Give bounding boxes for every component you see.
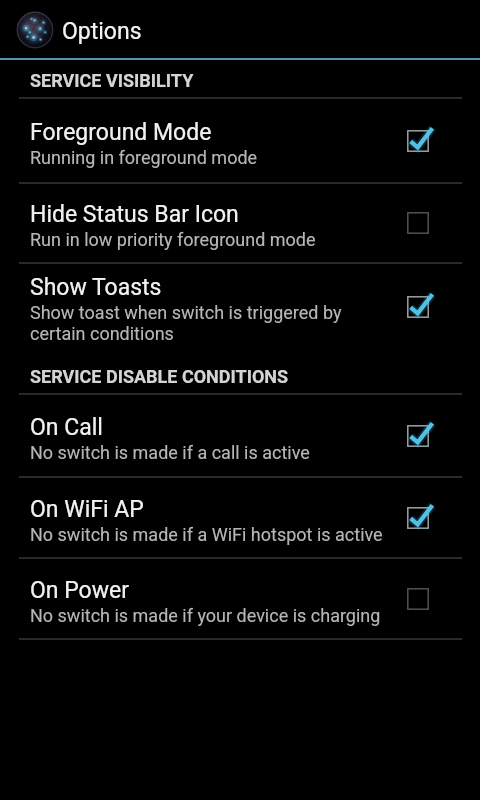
staticText: Show toast when switch is triggered by c… bbox=[30, 302, 388, 345]
button[interactable]: On Power bbox=[0, 559, 480, 638]
other: On Call, checked bbox=[396, 416, 440, 456]
other: Hide Status Bar Icon, not checked bbox=[396, 203, 440, 243]
staticText: Running in foreground mode bbox=[30, 147, 258, 168]
staticText: Foreground Mode bbox=[30, 119, 212, 146]
staticText: Run in low priority foreground mode bbox=[30, 229, 316, 250]
staticText: On WiFi AP bbox=[30, 496, 144, 523]
button[interactable]: Hide Status Bar Icon bbox=[0, 184, 480, 262]
other: On WiFi AP, checked bbox=[396, 498, 440, 538]
button[interactable]: Show Toasts bbox=[0, 264, 480, 350]
staticText: On Call bbox=[30, 414, 103, 441]
other: Show Toasts, checked bbox=[396, 287, 440, 327]
button[interactable]: On Call bbox=[0, 395, 480, 476]
button[interactable]: App icon, navigate up bbox=[0, 0, 480, 58]
staticText: Hide Status Bar Icon bbox=[30, 201, 239, 228]
staticText: No switch is made if a WiFi hotspot is a… bbox=[30, 524, 383, 545]
button[interactable]: Foreground Mode bbox=[0, 99, 480, 182]
other: On Power, not checked bbox=[396, 579, 440, 619]
staticText: Options bbox=[62, 18, 142, 45]
staticText: On Power bbox=[30, 577, 129, 604]
staticText: No switch is made if your device is char… bbox=[30, 605, 381, 626]
staticText: SERVICE DISABLE CONDITIONS bbox=[30, 366, 289, 387]
other: Foreground Mode, checked bbox=[396, 121, 440, 161]
staticText: SERVICE VISIBILITY bbox=[30, 70, 194, 91]
other: App icon, navigate up bbox=[15, 10, 55, 50]
staticText: Show Toasts bbox=[30, 274, 162, 301]
button[interactable]: On WiFi AP bbox=[0, 478, 480, 557]
staticText: No switch is made if a call is active bbox=[30, 442, 310, 463]
